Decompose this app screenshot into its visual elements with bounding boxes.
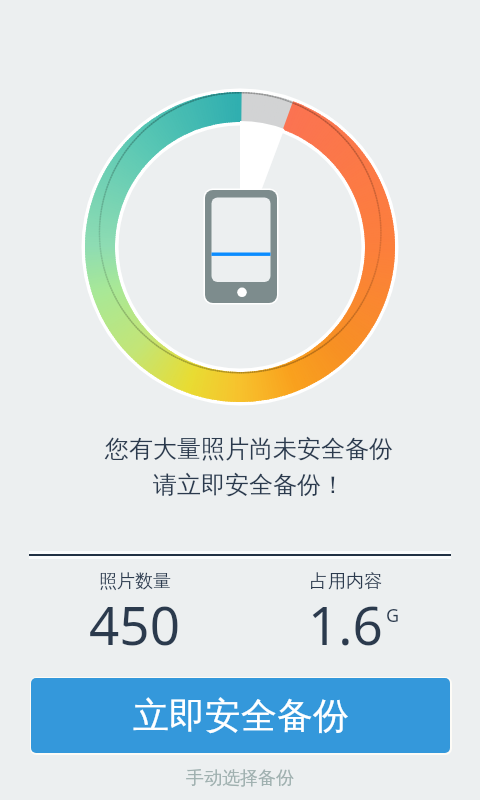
button[interactable]: 立即安全备份 [31,678,450,753]
staticText: 请立即安全备份！ [153,470,345,500]
staticText: 您有大量照片尚未安全备份 [105,434,393,464]
button[interactable]: 手动选择备份 [174,763,306,794]
staticText: 手动选择备份 [186,767,294,790]
staticText: 占用内容 [310,570,382,593]
staticText: 1.6 [308,588,383,660]
other: 备份状态环形图 [0,0,480,800]
staticText: G [386,603,400,628]
staticText: 450 [89,588,180,660]
staticText: 立即安全备份 [133,693,349,738]
staticText: 照片数量 [99,570,171,593]
